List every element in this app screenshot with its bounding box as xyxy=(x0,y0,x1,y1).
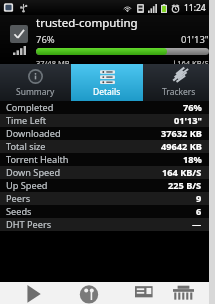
button[interactable]: Down Speed xyxy=(0,166,215,179)
button[interactable]: Play xyxy=(12,284,54,304)
staticText: Downloaded xyxy=(6,127,61,140)
button[interactable]: Contacts xyxy=(68,284,110,304)
staticText: DHT Peers xyxy=(6,218,52,231)
staticText: Summary xyxy=(16,86,55,98)
staticText: 49642 KB xyxy=(161,140,202,153)
button[interactable]: Summary xyxy=(0,64,71,101)
button[interactable]: Up Speed xyxy=(0,179,215,192)
staticText: 37/48 MB xyxy=(36,58,70,64)
button[interactable]: Messages xyxy=(124,284,168,304)
staticText: Torrent Health xyxy=(6,153,69,166)
staticText: 76% xyxy=(183,101,202,114)
staticText: Up Speed xyxy=(6,179,48,192)
staticText: Peers xyxy=(6,192,31,205)
staticText: 9 xyxy=(196,192,202,205)
staticText: trusted-computing xyxy=(36,15,138,31)
staticText: — xyxy=(192,218,202,231)
button[interactable]: Completed xyxy=(0,101,215,114)
button[interactable]: Peers xyxy=(0,192,215,205)
staticText: 164 KB/S xyxy=(162,166,202,179)
button[interactable]: Select torrent xyxy=(10,25,28,43)
button[interactable]: Torrent Health xyxy=(0,153,215,166)
staticText: Time Left xyxy=(6,114,47,127)
staticText: Details xyxy=(93,86,121,98)
button[interactable]: DHT Peers xyxy=(0,218,215,231)
button[interactable]: Trackers xyxy=(143,64,215,101)
staticText: 01'13" xyxy=(181,33,209,46)
staticText: ↓164 KB/S xyxy=(171,58,209,64)
staticText: 6 xyxy=(196,205,202,218)
staticText: Total size xyxy=(6,140,46,153)
button[interactable]: Details xyxy=(71,64,143,101)
button[interactable]: Total size xyxy=(0,140,215,153)
staticText: 225 B/S xyxy=(168,179,202,192)
staticText: 76% xyxy=(36,33,55,46)
button[interactable]: Time Left xyxy=(0,114,215,127)
button[interactable]: Downloaded xyxy=(0,127,215,140)
button[interactable]: Apps xyxy=(168,284,199,304)
staticText: Seeds xyxy=(6,205,32,218)
staticText: Completed xyxy=(6,101,54,114)
staticText: 11:24 xyxy=(184,2,206,14)
staticText: 18% xyxy=(183,153,202,166)
button[interactable]: Seeds xyxy=(0,205,215,218)
button[interactable]: Select torrent xyxy=(0,15,215,64)
staticText: 37632 KB xyxy=(161,127,202,140)
staticText: 01'13" xyxy=(174,114,202,127)
staticText: Trackers xyxy=(162,86,196,98)
staticText: Down Speed xyxy=(6,166,61,179)
